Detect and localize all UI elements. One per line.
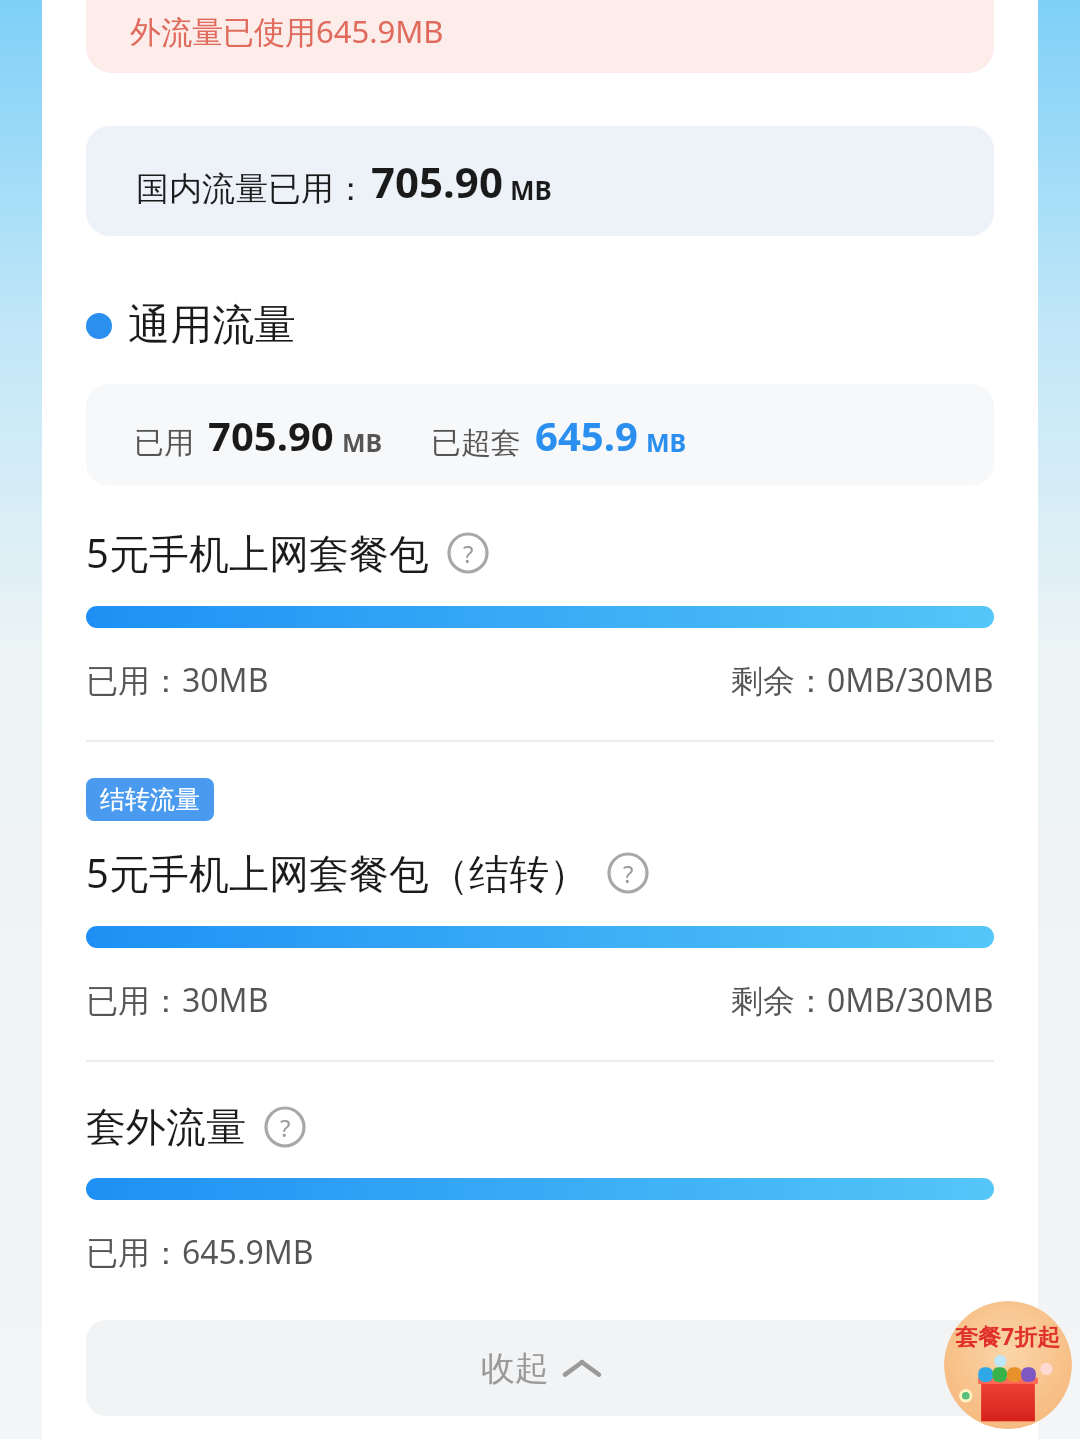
- staticText: 外流量已使用645.9MB: [130, 10, 444, 52]
- staticText: 已用：30MB: [86, 978, 269, 1022]
- button[interactable]: 套外流量: [86, 1102, 1038, 1152]
- staticText: MB: [510, 172, 552, 207]
- staticText: 已用: [134, 424, 194, 462]
- button[interactable]: 国内流量已用：: [86, 126, 994, 236]
- button[interactable]: 套餐7折起促销: [944, 1301, 1072, 1429]
- button[interactable]: 结转流量: [86, 778, 214, 821]
- button[interactable]: 外流量已使用645.9MB: [86, 0, 994, 73]
- staticText: ?: [623, 857, 634, 890]
- staticText: ?: [280, 1111, 291, 1144]
- staticText: 收起: [481, 1347, 549, 1390]
- button[interactable]: 帮助: [264, 1106, 306, 1148]
- staticText: 705.90: [371, 153, 503, 210]
- staticText: 645.9: [535, 408, 638, 462]
- button[interactable]: 5元手机上网套餐包: [86, 525, 1038, 580]
- staticText: 705.90: [208, 408, 334, 462]
- button[interactable]: 通用流量: [86, 299, 1038, 352]
- staticText: 通用流量: [128, 299, 296, 352]
- staticText: 剩余：0MB/30MB: [731, 658, 994, 702]
- staticText: 结转流量: [100, 784, 200, 815]
- staticText: 套外流量: [86, 1102, 246, 1152]
- button[interactable]: 已用: [86, 384, 994, 485]
- staticText: ?: [463, 537, 474, 570]
- button[interactable]: 帮助: [607, 852, 649, 894]
- staticText: 5元手机上网套餐包: [86, 525, 429, 580]
- staticText: 剩余：0MB/30MB: [731, 978, 994, 1022]
- button[interactable]: 帮助: [447, 532, 489, 574]
- staticText: 已超套: [431, 424, 521, 462]
- staticText: MB: [342, 425, 383, 459]
- staticText: 已用：645.9MB: [86, 1230, 314, 1274]
- button[interactable]: 5元手机上网套餐包（结转）: [86, 845, 1038, 900]
- staticText: 国内流量已用：: [136, 168, 367, 210]
- staticText: 已用：30MB: [86, 658, 269, 702]
- staticText: 5元手机上网套餐包（结转）: [86, 845, 589, 900]
- button[interactable]: 收起: [86, 1320, 994, 1416]
- staticText: 套餐7折起: [955, 1320, 1061, 1351]
- staticText: MB: [646, 425, 687, 459]
